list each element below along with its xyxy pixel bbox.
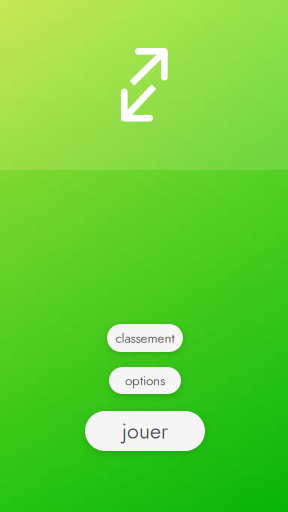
button[interactable]: options [109,367,181,394]
staticText: classement [115,328,174,348]
button[interactable]: jouer [85,411,205,451]
staticText: options [125,371,165,390]
button[interactable]: classement [107,324,183,352]
staticText: jouer [122,416,168,446]
